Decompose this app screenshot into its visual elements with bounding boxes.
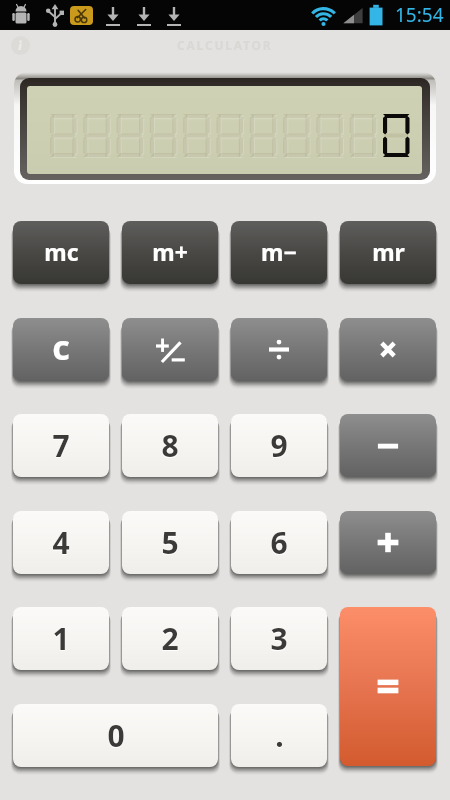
button[interactable]: m+ [122,221,218,284]
button[interactable]: 5 [122,511,218,574]
staticText: m− [261,236,297,267]
staticText: 0 [107,716,125,757]
staticText: 15:54 [395,2,444,28]
button[interactable]: 3 [231,607,327,670]
staticText: 8 [161,426,179,467]
staticText: CALCULATOR [177,37,273,53]
staticText: 5 [161,522,179,563]
button[interactable]: 0 [13,704,218,767]
staticText: . [275,716,284,757]
staticText: 4 [52,523,70,564]
staticText: c [52,324,70,370]
staticText: 9 [270,426,288,467]
staticText: 1 [52,618,70,659]
staticText: 4 [52,522,70,563]
button[interactable]: Plus [340,511,436,574]
staticText: 5 [161,523,179,564]
staticText: 0 [107,715,125,756]
staticText: 9 [270,425,288,466]
staticText: mc [44,236,79,267]
button[interactable]: 9 [231,414,327,477]
staticText: 2 [161,619,179,660]
staticText: 3 [270,619,288,660]
staticText: 7 [52,426,70,467]
staticText: m+ [152,236,188,267]
button[interactable]: 6 [231,511,327,574]
button[interactable]: 7 [13,414,109,477]
button[interactable]: mc [13,221,109,284]
staticText: 6 [270,523,288,564]
staticText: . [275,715,284,756]
button[interactable]: Equals [340,607,436,766]
button[interactable]: mr [340,221,436,284]
staticText: mr [372,236,405,267]
button[interactable]: 4 [13,511,109,574]
button[interactable]: Multiply [340,318,436,381]
staticText: 3 [270,618,288,659]
staticText: 1 [52,619,70,660]
button[interactable]: 1 [13,607,109,670]
staticText: 7 [52,425,70,466]
button[interactable]: Info [5,30,35,60]
button[interactable]: Plus minus [122,318,218,381]
button[interactable]: 2 [122,607,218,670]
button[interactable]: . [231,704,327,767]
staticText: 6 [270,522,288,563]
staticText: 8 [161,425,179,466]
button[interactable]: m− [231,221,327,284]
button[interactable]: 8 [122,414,218,477]
button[interactable]: Divide [231,318,327,381]
button[interactable]: c [13,318,109,381]
staticText: 2 [161,618,179,659]
button[interactable]: Minus [340,414,436,477]
